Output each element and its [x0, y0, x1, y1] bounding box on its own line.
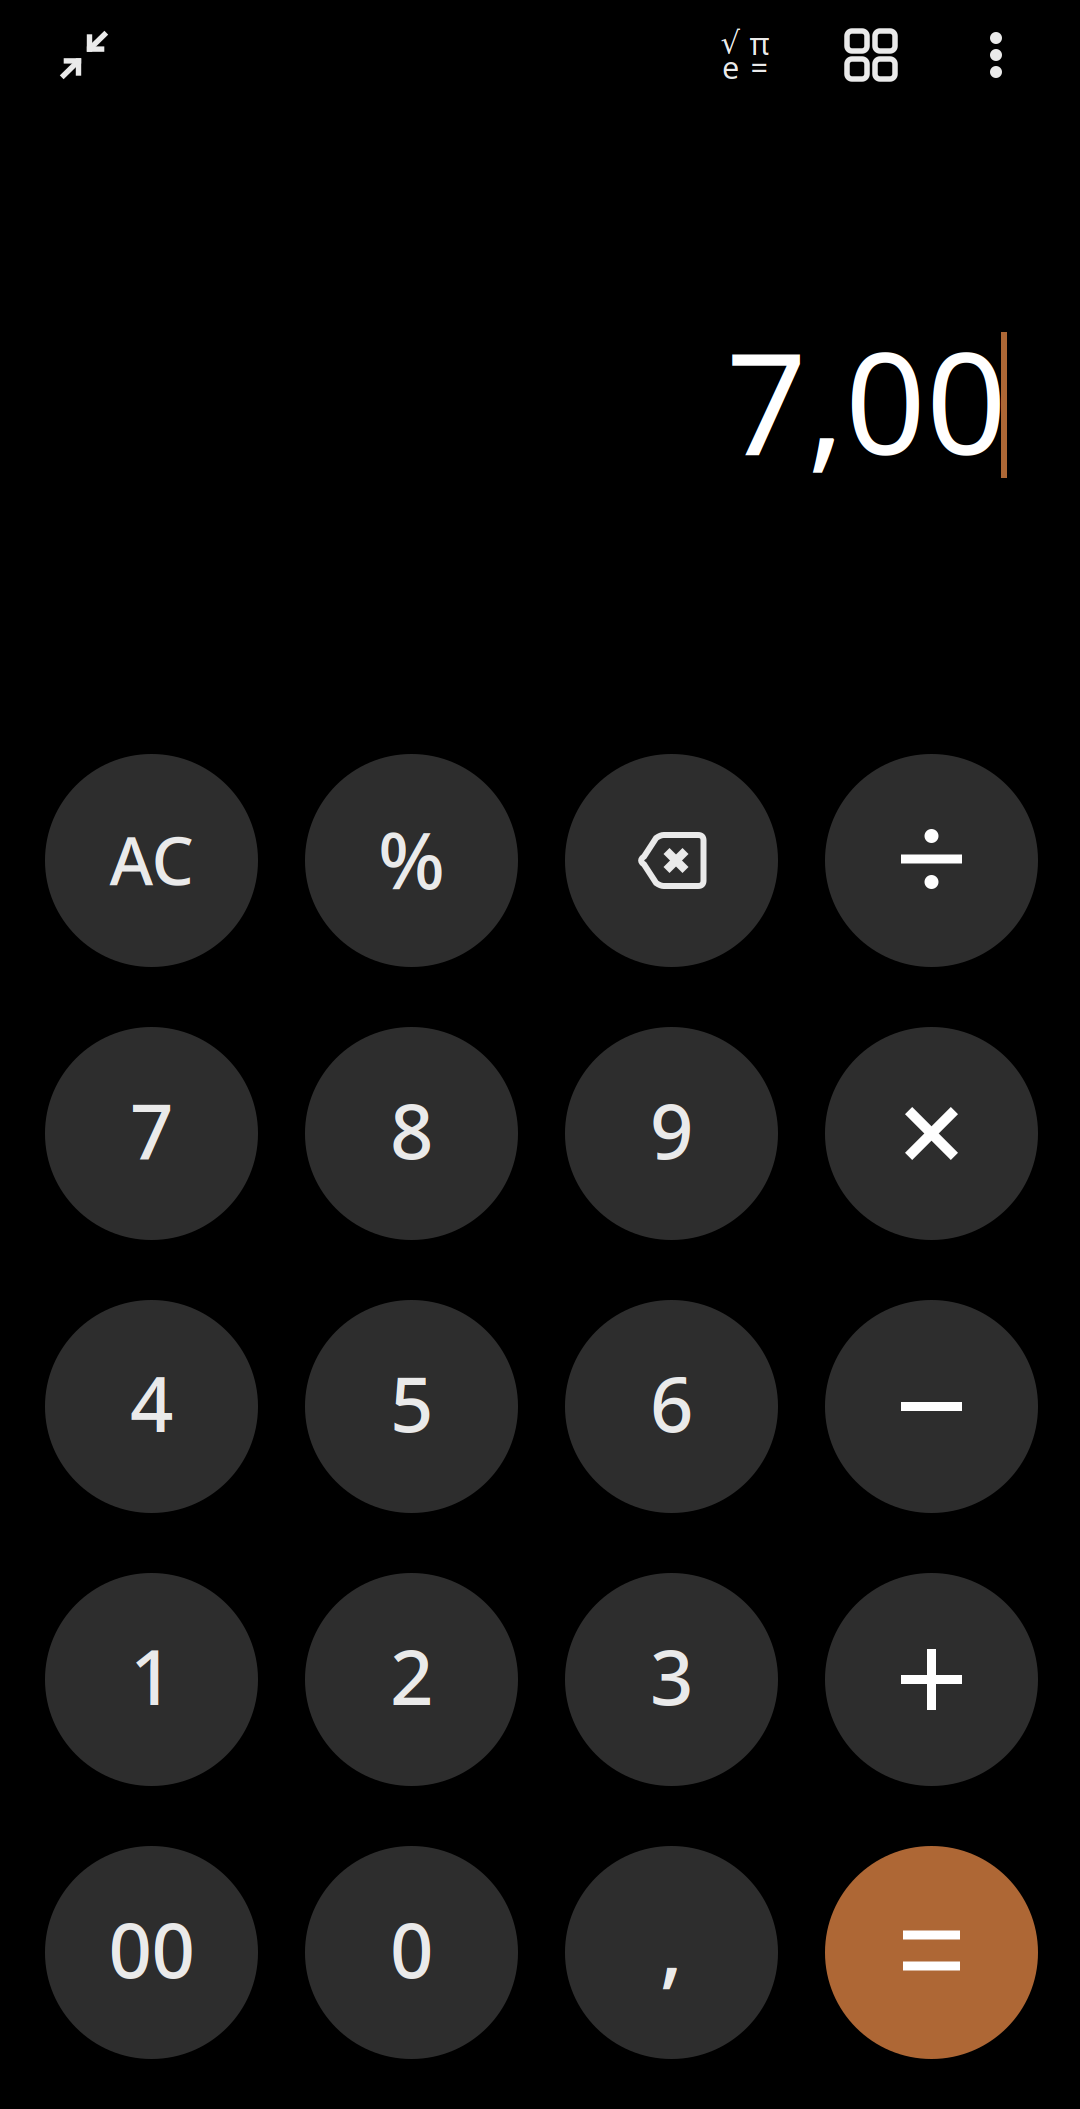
- staticText: ,: [659, 1887, 683, 2002]
- button[interactable]: More options: [990, 32, 1002, 78]
- staticText: 00: [108, 1898, 194, 1999]
- button[interactable]: Scientific mode: [716, 31, 774, 79]
- staticText: 6: [650, 1352, 693, 1453]
- button[interactable]: 6: [565, 1300, 778, 1513]
- staticText: 1: [130, 1625, 173, 1726]
- button[interactable]: AC: [45, 754, 258, 967]
- staticText: AC: [109, 815, 193, 904]
- button[interactable]: Equals: [825, 1846, 1038, 2059]
- button[interactable]: 0: [305, 1846, 518, 2059]
- button[interactable]: Collapse: [59, 30, 109, 80]
- button[interactable]: 7: [45, 1027, 258, 1240]
- staticText: π: [749, 23, 769, 63]
- staticText: 7: [130, 1079, 173, 1180]
- button[interactable]: Multiply: [825, 1027, 1038, 1240]
- button[interactable]: 00: [45, 1846, 258, 2059]
- staticText: e: [722, 47, 739, 87]
- button[interactable]: ,: [565, 1846, 778, 2059]
- button[interactable]: 4: [45, 1300, 258, 1513]
- staticText: 3: [650, 1625, 693, 1726]
- button[interactable]: Minus: [825, 1300, 1038, 1513]
- staticText: 2: [390, 1625, 433, 1726]
- staticText: 9: [650, 1079, 693, 1180]
- button[interactable]: Plus: [825, 1573, 1038, 1786]
- staticText: 0: [390, 1898, 433, 1999]
- staticText: =: [750, 47, 768, 87]
- button[interactable]: Backspace: [565, 754, 778, 967]
- button[interactable]: %: [305, 754, 518, 967]
- button[interactable]: Divide: [825, 754, 1038, 967]
- button[interactable]: 5: [305, 1300, 518, 1513]
- staticText: 7,00: [726, 306, 1007, 494]
- button[interactable]: 8: [305, 1027, 518, 1240]
- staticText: 4: [130, 1352, 173, 1453]
- button[interactable]: 3: [565, 1573, 778, 1786]
- button[interactable]: 1: [45, 1573, 258, 1786]
- staticText: 8: [390, 1079, 433, 1180]
- button[interactable]: 9: [565, 1027, 778, 1240]
- staticText: 5: [390, 1352, 433, 1453]
- button[interactable]: 2: [305, 1573, 518, 1786]
- staticText: √: [720, 26, 740, 60]
- button[interactable]: Unit converter: [847, 31, 895, 79]
- staticText: %: [378, 806, 445, 911]
